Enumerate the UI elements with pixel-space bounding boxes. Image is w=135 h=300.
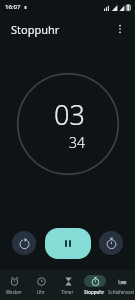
staticText: Wecker <box>6 289 22 295</box>
staticText: 03 <box>54 96 85 133</box>
button[interactable]: More options <box>109 18 131 40</box>
staticText: Schlafenszeit <box>108 289 135 295</box>
button[interactable]: Uhr <box>27 270 54 300</box>
button[interactable]: Runde <box>99 231 123 255</box>
button[interactable]: Wecker <box>0 270 27 300</box>
button[interactable]: Zurücksetzen <box>12 231 36 255</box>
staticText: Timer <box>61 289 74 295</box>
button[interactable]: Timer <box>54 270 81 300</box>
button[interactable]: Pause <box>45 228 91 259</box>
button[interactable]: Schlafenszeit <box>108 270 135 300</box>
staticText: 16:07 <box>5 3 21 11</box>
staticText: Stoppuhr <box>11 22 60 37</box>
staticText: 34 <box>69 133 85 152</box>
button[interactable]: Stoppuhr <box>81 270 108 300</box>
staticText: Stoppuhr <box>84 289 105 295</box>
staticText: Uhr <box>37 289 45 295</box>
